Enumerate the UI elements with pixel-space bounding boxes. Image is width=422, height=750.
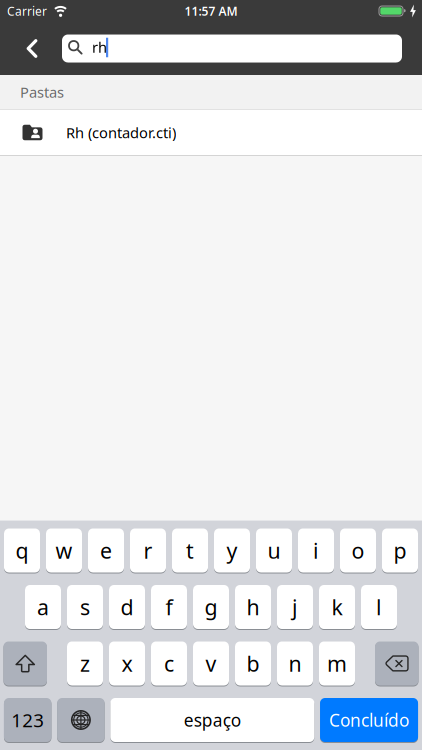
button[interactable]: q <box>4 528 40 573</box>
button[interactable]: s <box>67 584 103 629</box>
button[interactable]: o <box>340 528 376 573</box>
staticText: c <box>164 649 174 678</box>
staticText: Pastas <box>20 82 64 102</box>
button[interactable]: t <box>172 528 208 573</box>
button[interactable]: w <box>46 528 82 573</box>
button[interactable]: d <box>109 584 145 629</box>
staticText: r <box>143 536 152 565</box>
staticText: m <box>327 649 347 678</box>
button[interactable]: e <box>88 528 124 573</box>
staticText: o <box>351 536 364 565</box>
button[interactable]: v <box>193 641 229 686</box>
staticText: f <box>165 593 172 621</box>
button[interactable]: b <box>235 641 271 686</box>
button[interactable]: h <box>235 584 271 629</box>
staticText: d <box>120 593 133 621</box>
button[interactable]: z <box>67 641 103 686</box>
button[interactable]: x <box>109 641 145 686</box>
button[interactable]: Concluído <box>320 697 418 742</box>
button[interactable]: i <box>298 528 334 573</box>
staticText: v <box>205 649 216 678</box>
staticText: n <box>288 649 301 678</box>
staticText: b <box>246 649 259 678</box>
staticText: u <box>267 536 280 565</box>
staticText: k <box>331 593 342 621</box>
button[interactable]: Back <box>10 28 54 68</box>
staticText: q <box>15 536 28 565</box>
staticText: i <box>313 536 319 565</box>
staticText: h <box>246 593 259 621</box>
button[interactable]: Rh (contador.cti) <box>0 110 422 155</box>
staticText: z <box>80 649 90 678</box>
button[interactable]: c <box>151 641 187 686</box>
button[interactable]: Next keyboard <box>57 697 105 742</box>
staticText: s <box>80 593 90 621</box>
button[interactable]: Search <box>62 34 402 62</box>
staticText: Carrier <box>7 3 47 19</box>
staticText: t <box>186 536 194 565</box>
button[interactable]: l <box>361 584 397 629</box>
button[interactable]: j <box>277 584 313 629</box>
staticText: espaço <box>184 708 241 731</box>
staticText: x <box>121 649 132 678</box>
staticText: a <box>37 593 49 621</box>
staticText: Rh (contador.cti) <box>66 123 176 142</box>
button[interactable]: k <box>319 584 355 629</box>
staticText: e <box>100 536 112 565</box>
staticText: w <box>55 536 72 565</box>
staticText: rh <box>92 37 107 57</box>
button[interactable]: p <box>382 528 418 573</box>
staticText: p <box>393 536 406 565</box>
button[interactable]: 123 <box>4 697 51 742</box>
button[interactable]: a <box>25 584 61 629</box>
staticText: g <box>204 593 217 621</box>
button[interactable]: m <box>319 641 355 686</box>
button[interactable]: y <box>214 528 250 573</box>
staticText: l <box>376 593 382 621</box>
staticText: 11:57 AM <box>184 3 237 19</box>
staticText: j <box>292 593 298 621</box>
button[interactable]: Shift <box>3 641 47 686</box>
staticText: 123 <box>11 708 44 732</box>
staticText: Concluído <box>329 708 409 731</box>
button[interactable]: u <box>256 528 292 573</box>
button[interactable]: n <box>277 641 313 686</box>
button[interactable]: f <box>151 584 187 629</box>
staticText: y <box>226 536 237 565</box>
button[interactable]: r <box>130 528 166 573</box>
button[interactable]: g <box>193 584 229 629</box>
button[interactable]: Delete <box>375 641 418 686</box>
button[interactable]: espaço <box>110 697 314 742</box>
